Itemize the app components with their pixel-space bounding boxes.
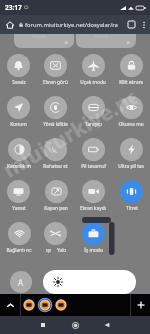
button[interactable]: Home [59, 316, 91, 334]
staticText: Yönü kilitle [43, 121, 68, 128]
button[interactable]: Bağlantı nc [0, 222, 37, 264]
button[interactable]: Ultra pil tas [112, 138, 150, 180]
button[interactable]: Tab 2 [37, 294, 53, 316]
button[interactable] [43, 270, 136, 294]
staticText: İş modu [84, 247, 103, 254]
button[interactable]: ışı Yakı [37, 222, 74, 264]
button[interactable]: Pil tasarruf [74, 138, 112, 180]
button[interactable]: Tabs [125, 18, 138, 31]
staticText: Rahatsız et [43, 163, 68, 170]
button[interactable]: New tab [131, 294, 150, 316]
button[interactable]: Okuma mo [112, 96, 150, 138]
button[interactable]: Recents [27, 316, 59, 334]
button[interactable]: Tab 1 [21, 294, 37, 316]
button[interactable]: Yönü kilitle [37, 96, 74, 138]
button[interactable]: Konum [0, 96, 37, 138]
staticText: Ekran kaydı [80, 205, 106, 212]
staticText: Kilit ekranı [119, 79, 143, 86]
staticText: Kapalı [32, 34, 47, 40]
staticText: ışı Yakı [46, 247, 66, 254]
button[interactable]: Expand tabs [0, 294, 20, 316]
button[interactable]: Karanlık m [0, 138, 37, 180]
staticText: Ekran görü [43, 79, 68, 86]
staticText: Tarayıcı [85, 121, 102, 128]
button[interactable]: Yansıt [0, 180, 37, 222]
button[interactable]: More options [138, 19, 149, 30]
staticText: Ultra pil tas [118, 163, 144, 170]
button[interactable]: Ekran kaydı [74, 180, 112, 222]
button[interactable]: Tarayıcı [74, 96, 112, 138]
button[interactable]: Uçak modu [74, 54, 112, 96]
button[interactable]: Kapalı [14, 34, 74, 48]
staticText: Konum [10, 121, 27, 128]
staticText: Yansıt [12, 205, 26, 212]
staticText: miuiturkiye.net [0, 83, 139, 180]
staticText: 23:17 [5, 3, 22, 12]
button[interactable]: Home [3, 18, 16, 31]
button[interactable]: Rahatsız et [37, 138, 74, 180]
button[interactable]: Ekran görü [37, 54, 74, 96]
staticText: Bağlantı nc [6, 247, 32, 254]
staticText: Karanlık m [7, 163, 31, 170]
button[interactable]: A [10, 271, 32, 293]
staticText: Kayan pen [44, 205, 68, 212]
button[interactable]: Sessiz [0, 54, 37, 96]
button[interactable]: İş modu [74, 222, 112, 264]
staticText: Uçak modu [80, 79, 106, 86]
staticText: Kapalı [94, 34, 109, 40]
button[interactable]: Titret [112, 180, 150, 222]
button[interactable]: Kayan pen [37, 180, 74, 222]
staticText: Pil tasarruf [81, 163, 106, 170]
staticText: A [18, 277, 24, 288]
staticText: forum.miuiturkiye.net/dosyalar/ra [25, 21, 118, 29]
staticText: Sessiz [12, 79, 26, 86]
button[interactable]: Kapalı [76, 34, 136, 48]
button[interactable]: Tab 3 [53, 294, 69, 316]
staticText: Titret [126, 205, 138, 212]
button[interactable]: Back [91, 316, 123, 334]
button[interactable]: Kilit ekranı [112, 54, 150, 96]
staticText: Okuma mo [118, 121, 144, 128]
